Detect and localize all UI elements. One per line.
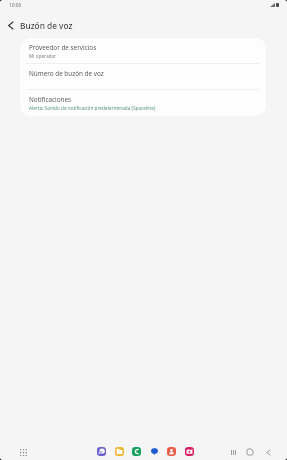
button[interactable]: Proveedor de servicios [20,38,266,63]
staticText: Mi operador [29,53,57,59]
button[interactable]: Apps [16,445,30,459]
staticText: Proveedor de servicios [29,43,97,52]
button[interactable]: My Files [115,447,124,456]
button[interactable]: Back [261,445,275,459]
button[interactable]: Messages [150,447,159,456]
button[interactable]: Phone [132,447,141,456]
button[interactable]: Internet [97,447,106,456]
staticText: Alerta; Sonido de notificación predeterm… [29,105,156,111]
staticText: Número de buzón de voz [29,69,104,78]
button[interactable]: Camera [185,447,194,456]
button[interactable]: Back [3,18,18,33]
button[interactable]: Contacts [167,447,176,456]
button[interactable]: Notificaciones [20,90,266,116]
staticText: Notificaciones [29,95,72,104]
staticText: Buzón de voz [20,20,73,31]
staticText: 10:00 [9,2,22,9]
button[interactable]: Home [243,445,257,459]
button[interactable]: Número de buzón de voz [20,64,266,89]
button[interactable]: Recent apps [226,445,240,459]
